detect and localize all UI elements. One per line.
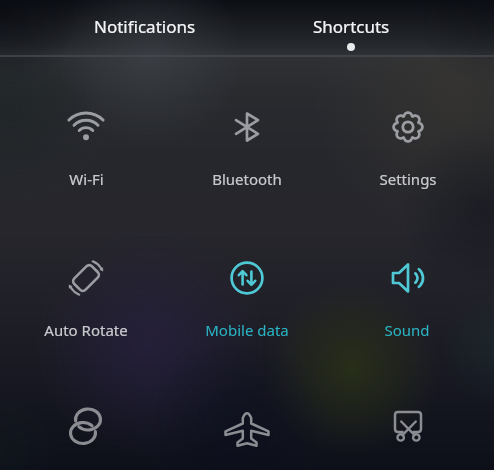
button[interactable]: Screenshot	[326, 406, 490, 470]
staticText: Shortcuts	[313, 15, 390, 38]
staticText: Wi-Fi	[69, 169, 104, 189]
button[interactable]: Notifications	[45, 0, 245, 57]
button[interactable]: Auto Rotate	[4, 256, 168, 340]
button[interactable]: Airplane mode	[165, 406, 329, 470]
staticText: Bluetooth	[212, 169, 282, 189]
button[interactable]: Bluetooth	[165, 105, 329, 189]
staticText: Mobile data	[205, 320, 289, 340]
button[interactable]: Sound	[325, 256, 489, 340]
staticText: Sound	[384, 320, 430, 340]
button[interactable]: Settings	[326, 105, 490, 189]
button[interactable]: Link	[4, 406, 168, 470]
staticText: Settings	[379, 169, 437, 189]
button[interactable]: Wi-Fi	[4, 105, 168, 189]
staticText: Notifications	[94, 15, 196, 38]
button[interactable]: Shortcuts	[251, 0, 451, 57]
staticText: Auto Rotate	[44, 320, 128, 340]
button[interactable]: Mobile data	[165, 256, 329, 340]
